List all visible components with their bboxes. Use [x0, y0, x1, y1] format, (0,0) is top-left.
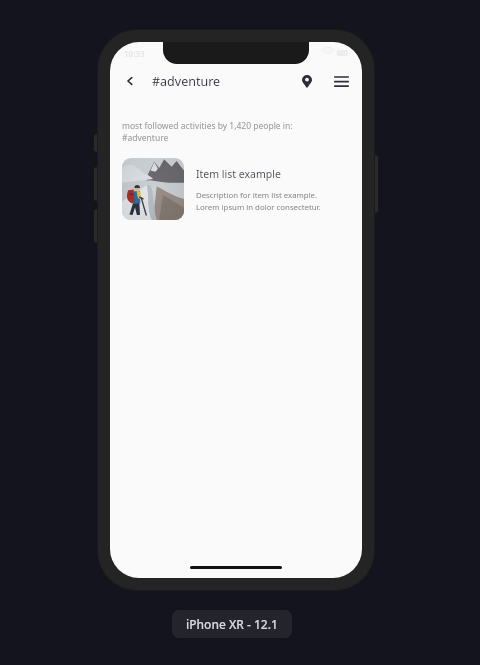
staticText: Description for item list example. Lorem…: [196, 190, 321, 212]
button[interactable]: Location: [292, 66, 322, 96]
button[interactable]: Item list example: [110, 156, 362, 222]
button[interactable]: Menu: [326, 66, 356, 96]
button[interactable]: iPhone XR - 12.1: [172, 610, 292, 638]
staticText: iPhone XR - 12.1: [186, 616, 278, 632]
staticText: #adventure: [152, 73, 221, 90]
button[interactable]: Back: [116, 67, 144, 95]
staticText: Item list example: [196, 167, 281, 181]
staticText: most followed activities by 1,420 people…: [122, 120, 293, 144]
staticText: 10:33: [124, 48, 145, 59]
